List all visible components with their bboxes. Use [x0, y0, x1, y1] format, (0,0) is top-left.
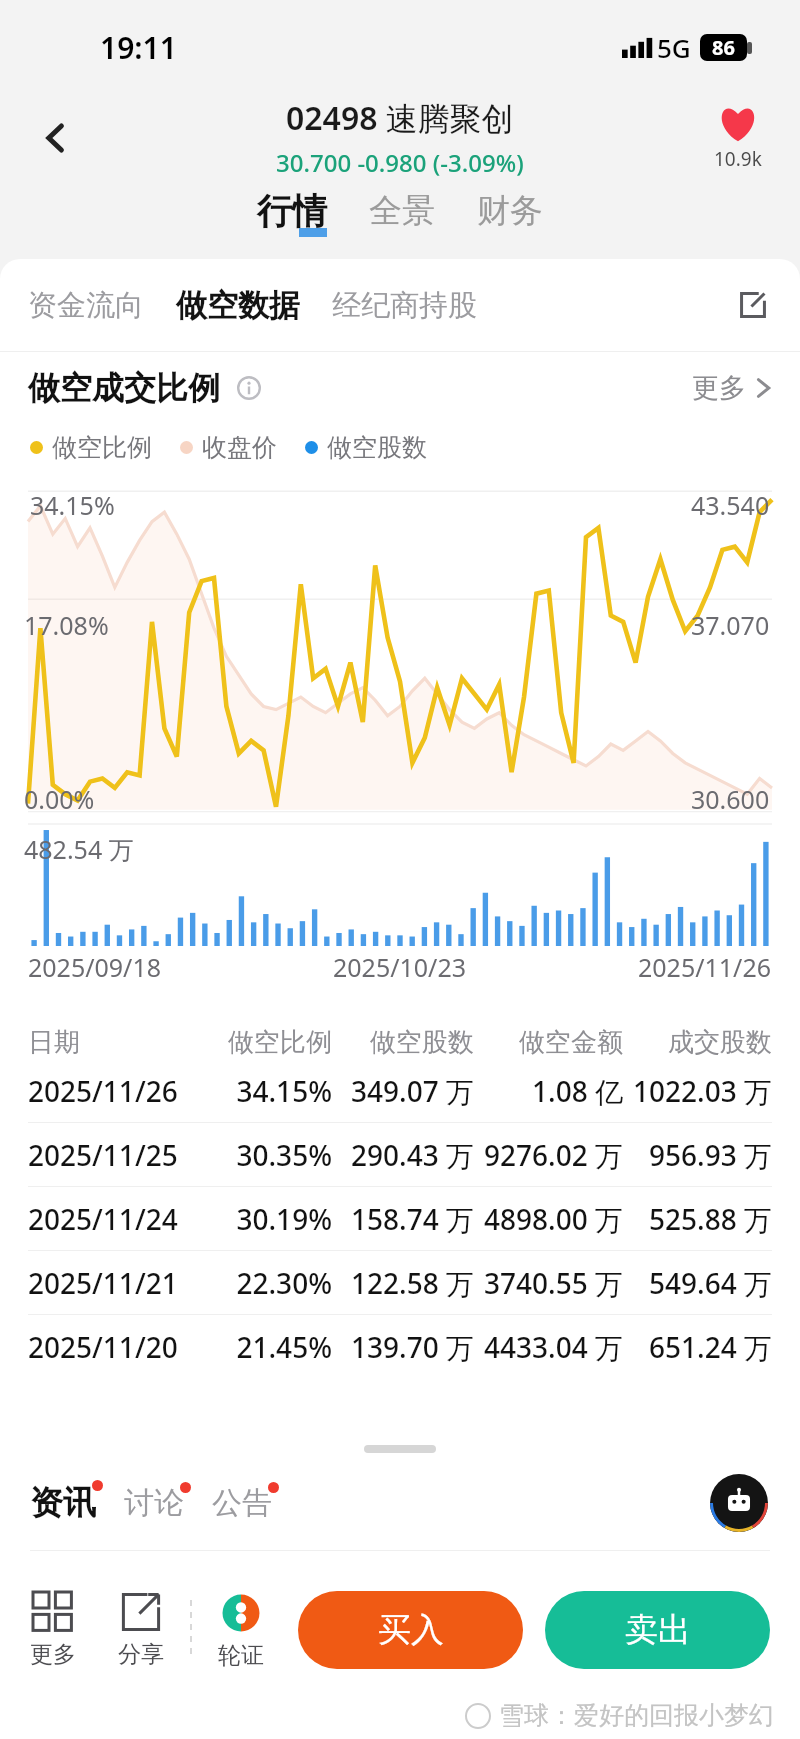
button[interactable]: 更多: [692, 371, 772, 405]
staticText: 86: [712, 34, 735, 61]
staticText: 2025/11/26: [28, 1072, 197, 1110]
button[interactable]: 2025/11/25: [0, 1123, 800, 1187]
staticText: 做空成交比例: [28, 368, 220, 408]
staticText: 37.070: [691, 608, 770, 642]
staticText: 651.24 万: [623, 1328, 772, 1366]
staticText: 2025/09/18: [28, 950, 162, 984]
staticText: 做空股数: [327, 432, 427, 463]
button[interactable]: Open in new: [736, 288, 770, 322]
staticText: 雪球：爱好的回报小梦幻: [499, 1700, 774, 1731]
button[interactable]: 2025/11/24: [0, 1187, 800, 1251]
button[interactable]: 行情: [257, 189, 327, 233]
staticText: 139.70 万: [332, 1328, 474, 1366]
staticText: 2025/11/26: [638, 950, 772, 984]
staticText: 做空比例: [52, 432, 152, 463]
staticText: 3740.55 万: [474, 1264, 623, 1302]
button[interactable]: 轮证: [218, 1591, 264, 1670]
staticText: 122.58 万: [332, 1264, 474, 1302]
staticText: 资讯: [30, 1482, 96, 1524]
staticText: 34.15%: [197, 1072, 332, 1110]
button[interactable]: Favorite: [714, 104, 762, 172]
staticText: 2025/10/23: [333, 950, 467, 984]
staticText: 1022.03 万: [623, 1072, 772, 1110]
button[interactable]: 买入: [298, 1591, 523, 1669]
button[interactable]: 2025/11/26: [0, 1059, 800, 1123]
staticText: 2025/11/25: [28, 1136, 197, 1174]
staticText: 30.600: [691, 782, 770, 816]
staticText: 30.35%: [197, 1136, 332, 1174]
staticText: 34.15%: [30, 488, 115, 522]
staticText: 349.07 万: [332, 1072, 474, 1110]
staticText: 买入: [378, 1609, 444, 1651]
staticText: 2025/11/21: [28, 1264, 197, 1302]
staticText: 17.08%: [24, 608, 109, 642]
staticText: 43.540: [691, 488, 770, 522]
staticText: 做空金额: [474, 1026, 623, 1059]
button[interactable]: 公告: [212, 1484, 272, 1522]
staticText: 日期: [28, 1026, 197, 1059]
staticText: 4433.04 万: [474, 1328, 623, 1366]
staticText: 做空比例: [197, 1026, 332, 1059]
staticText: 30.19%: [197, 1200, 332, 1238]
staticText: 2025/11/24: [28, 1200, 197, 1238]
staticText: 290.43 万: [332, 1136, 474, 1174]
staticText: 收盘价: [202, 432, 277, 463]
button[interactable]: 全景: [369, 190, 435, 232]
staticText: 2025/11/20: [28, 1328, 197, 1366]
staticText: 成交股数: [623, 1026, 772, 1059]
staticText: 10.9k: [714, 146, 762, 172]
staticText: 更多: [30, 1640, 76, 1669]
staticText: 公告: [212, 1484, 272, 1522]
button[interactable]: 2025/11/20: [0, 1315, 800, 1379]
staticText: 4898.00 万: [474, 1200, 623, 1238]
staticText: 158.74 万: [332, 1200, 474, 1238]
staticText: 分享: [118, 1640, 164, 1669]
button[interactable]: 资讯: [30, 1482, 96, 1524]
button[interactable]: 更多: [30, 1592, 76, 1669]
button[interactable]: 讨论: [124, 1484, 184, 1522]
staticText: 30.700 -0.980 (-3.09%): [276, 146, 524, 179]
staticText: 行情: [257, 189, 327, 233]
button[interactable]: 财务: [477, 190, 543, 232]
staticText: 19:11: [100, 27, 177, 68]
button[interactable]: 经纪商持股: [332, 287, 477, 324]
staticText: 549.64 万: [623, 1264, 772, 1302]
staticText: 5G: [657, 30, 691, 65]
staticText: 9276.02 万: [474, 1136, 623, 1174]
button[interactable]: AI assistant: [710, 1474, 768, 1532]
staticText: 02498 速腾聚创: [286, 96, 514, 140]
button[interactable]: 2025/11/21: [0, 1251, 800, 1315]
button[interactable]: 分享: [118, 1592, 164, 1669]
staticText: 22.30%: [197, 1264, 332, 1302]
button[interactable]: 卖出: [545, 1591, 770, 1669]
staticText: 956.93 万: [623, 1136, 772, 1174]
staticText: 525.88 万: [623, 1200, 772, 1238]
staticText: 更多: [692, 371, 746, 405]
staticText: 做空股数: [332, 1026, 474, 1059]
button[interactable]: Info: [236, 375, 262, 401]
staticText: 0.00%: [24, 782, 95, 816]
staticText: 1.08 亿: [474, 1072, 623, 1110]
staticText: 轮证: [218, 1641, 264, 1670]
button[interactable]: Back: [28, 110, 84, 166]
button[interactable]: 做空数据: [176, 286, 300, 325]
staticText: 讨论: [124, 1484, 184, 1522]
staticText: 21.45%: [197, 1328, 332, 1366]
staticText: 卖出: [625, 1609, 691, 1651]
staticText: 482.54 万: [24, 832, 134, 866]
button[interactable]: 资金流向: [28, 287, 144, 324]
